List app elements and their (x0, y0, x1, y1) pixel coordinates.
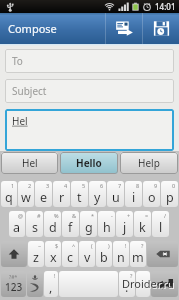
staticText: # (37, 212, 41, 219)
button[interactable]: ~ (28, 241, 44, 267)
button[interactable]: 1 (1, 181, 17, 207)
staticText: d (49, 219, 57, 236)
button[interactable]: 3 (35, 181, 52, 207)
button[interactable]: Send (106, 13, 142, 44)
staticText: $ (55, 242, 59, 249)
staticText: p (166, 189, 174, 206)
button[interactable]: + (116, 211, 133, 237)
button[interactable]: / (152, 211, 169, 237)
button[interactable]: Shift (1, 241, 27, 267)
staticText: . (125, 279, 129, 296)
staticText: b (100, 249, 108, 266)
staticText: ) (108, 242, 110, 249)
button[interactable]: 0 (161, 181, 178, 207)
button[interactable]: Subject (5, 79, 174, 103)
staticText: ! (125, 242, 127, 249)
staticText: z (33, 249, 39, 266)
button[interactable]: To (5, 49, 174, 73)
button[interactable]: Hello (60, 152, 118, 174)
button[interactable]: @ (9, 211, 25, 237)
button[interactable]: 7 (107, 181, 124, 207)
staticText: k (139, 219, 146, 236)
button[interactable]: Help (120, 152, 178, 174)
button[interactable]: ? (130, 241, 146, 267)
button[interactable]: % (44, 211, 61, 237)
staticText: a (13, 219, 21, 236)
staticText: l (159, 219, 163, 236)
button[interactable]: 4 (53, 181, 70, 207)
button[interactable]: 8 (125, 181, 142, 207)
button[interactable]: & (62, 211, 79, 237)
button[interactable]: 6 (89, 181, 106, 207)
staticText: Hello (76, 156, 102, 170)
button[interactable]: Hel (5, 109, 174, 151)
staticText: w (21, 189, 31, 206)
button[interactable]: ! (113, 241, 129, 267)
staticText: * (91, 212, 95, 219)
staticText: g (85, 219, 93, 236)
button[interactable]: Enter (151, 271, 178, 297)
staticText: 8 (136, 182, 140, 189)
staticText: Subject (12, 84, 47, 98)
staticText: 14:01 (155, 1, 176, 12)
button[interactable]: - (98, 211, 115, 237)
staticText: 7 (118, 182, 122, 189)
staticText: To (12, 54, 23, 68)
button[interactable]: = (134, 211, 151, 237)
staticText: 123 (5, 280, 23, 294)
staticText: Hel (12, 114, 28, 128)
staticText: t (77, 189, 82, 206)
button[interactable]: Save draft (143, 13, 179, 44)
button[interactable]: ?#* (1, 271, 26, 297)
staticText: - (111, 212, 113, 219)
button[interactable]: # (26, 211, 43, 237)
staticText: 6 (100, 182, 104, 189)
staticText: & (72, 212, 77, 219)
staticText: v (84, 249, 91, 266)
staticText: Droider.ru (123, 277, 175, 292)
staticText: + (127, 212, 131, 219)
button[interactable]: Backspace (147, 241, 178, 267)
button[interactable]: 2 (18, 181, 34, 207)
button[interactable]: Voice input (27, 271, 43, 297)
staticText: 9 (154, 182, 158, 189)
staticText: Help (138, 156, 160, 170)
staticText: ? (141, 242, 144, 249)
button[interactable]: 9 (143, 181, 160, 207)
staticText: s (32, 219, 38, 236)
staticText: Compose (8, 21, 57, 36)
staticText: h (103, 219, 111, 236)
staticText: q (5, 189, 13, 206)
button[interactable]: Hel (1, 152, 58, 174)
staticText: o (148, 189, 156, 206)
staticText: i (132, 189, 136, 206)
button[interactable]: ? (119, 271, 135, 297)
staticText: 4 (64, 182, 68, 189)
staticText: / (164, 212, 167, 219)
staticText: 0 (172, 182, 176, 189)
staticText: m (132, 249, 144, 266)
staticText: u (112, 189, 120, 206)
button[interactable] (59, 271, 118, 297)
staticText: ? (130, 272, 133, 279)
staticText: ! (54, 272, 56, 279)
button[interactable] (136, 271, 150, 297)
staticText: r (59, 189, 65, 206)
button[interactable]: ^ (62, 241, 78, 267)
staticText: 2 (28, 182, 32, 189)
button[interactable]: ! (44, 271, 58, 297)
staticText: % (54, 212, 59, 219)
staticText: j (123, 219, 127, 236)
staticText: @ (18, 212, 23, 219)
button[interactable]: ( (79, 241, 95, 267)
button[interactable]: 5 (71, 181, 88, 207)
staticText: f (68, 219, 73, 236)
staticText: e (40, 189, 48, 206)
button[interactable]: $ (45, 241, 61, 267)
staticText: ~ (38, 242, 42, 249)
staticText: y (94, 189, 101, 206)
button[interactable]: * (80, 211, 97, 237)
staticText: ( (91, 242, 93, 249)
button[interactable]: ) (96, 241, 112, 267)
staticText: 3 (46, 182, 50, 189)
